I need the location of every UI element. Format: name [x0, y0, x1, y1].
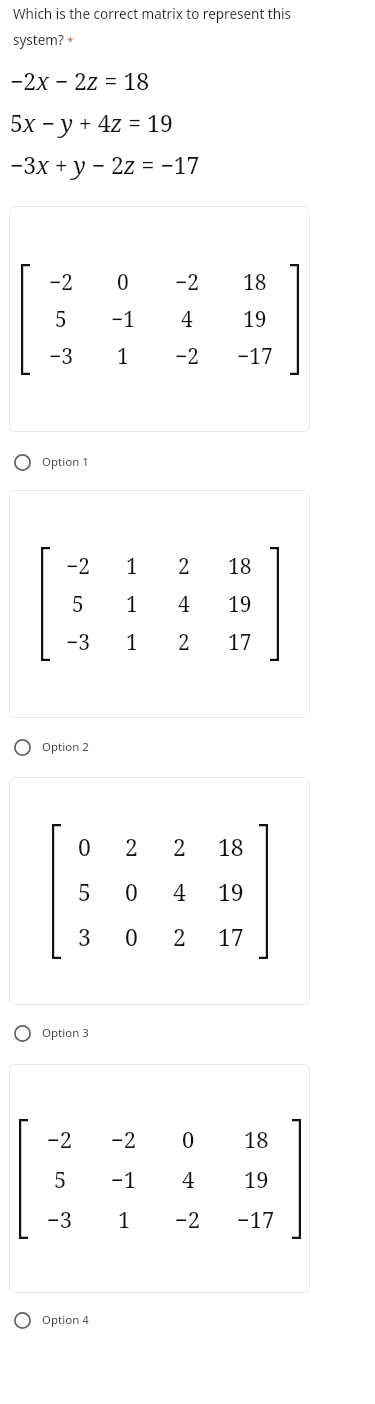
- staticText: 5: [78, 876, 91, 907]
- other: Option 4: [14, 1312, 31, 1329]
- staticText: 1: [117, 342, 129, 371]
- staticText: 18: [243, 268, 267, 297]
- other: Option 1: [14, 454, 31, 471]
- staticText: 1: [118, 1204, 131, 1234]
- staticText: −2: [66, 552, 90, 581]
- staticText: 5: [54, 1164, 67, 1194]
- staticText: Which is the correct matrix to represent…: [13, 5, 291, 49]
- staticText: 19: [244, 1164, 269, 1194]
- staticText: 19: [218, 876, 244, 907]
- staticText: −17: [237, 342, 273, 371]
- staticText: Option 4: [42, 1312, 89, 1328]
- staticText: 18: [218, 831, 244, 862]
- button[interactable]: 0: [9, 777, 310, 1005]
- button[interactable]: −2: [9, 206, 310, 432]
- staticText: −3: [66, 628, 90, 657]
- staticText: −2: [49, 268, 73, 297]
- other: Option 2: [14, 739, 31, 756]
- button[interactable]: Option 4: [0, 1303, 375, 1337]
- button[interactable]: Option 3: [0, 1016, 375, 1050]
- staticText: 4: [178, 590, 190, 619]
- staticText: Option 1: [42, 454, 89, 470]
- staticText: −2: [175, 1204, 201, 1234]
- staticText: 2: [173, 831, 186, 862]
- staticText: 18: [228, 552, 252, 581]
- button[interactable]: −2: [9, 490, 310, 718]
- staticText: −2x − 2z = 18: [10, 65, 150, 96]
- staticText: 0: [182, 1124, 195, 1154]
- staticText: −3: [49, 342, 73, 371]
- staticText: 5x − y + 4z = 19: [10, 107, 173, 138]
- staticText: −2: [175, 342, 199, 371]
- staticText: 4: [173, 876, 186, 907]
- staticText: −1: [111, 1164, 137, 1194]
- staticText: 2: [125, 831, 138, 862]
- staticText: 17: [228, 628, 252, 657]
- staticText: 1: [126, 628, 138, 657]
- staticText: 19: [228, 590, 252, 619]
- staticText: Option 2: [42, 739, 89, 755]
- staticText: Option 3: [42, 1025, 89, 1041]
- staticText: 5: [72, 590, 84, 619]
- staticText: 0: [125, 876, 138, 907]
- staticText: 4: [182, 1164, 195, 1194]
- staticText: −3x + y − 2z = −17: [10, 149, 200, 180]
- staticText: 1: [126, 590, 138, 619]
- staticText: −2: [47, 1124, 73, 1154]
- staticText: −2: [111, 1124, 137, 1154]
- staticText: 4: [181, 305, 193, 334]
- staticText: 0: [125, 921, 138, 952]
- button[interactable]: −2: [9, 1064, 310, 1293]
- staticText: −17: [237, 1204, 275, 1234]
- staticText: −2: [175, 268, 199, 297]
- staticText: 3: [78, 921, 91, 952]
- staticText: 1: [126, 552, 138, 581]
- staticText: 5: [55, 305, 67, 334]
- staticText: 0: [117, 268, 129, 297]
- staticText: −1: [111, 305, 135, 334]
- button[interactable]: Option 2: [0, 730, 375, 764]
- staticText: 17: [218, 921, 244, 952]
- button[interactable]: Option 1: [0, 445, 375, 479]
- staticText: −3: [47, 1204, 73, 1234]
- staticText: 2: [173, 921, 186, 952]
- staticText: 19: [243, 305, 267, 334]
- staticText: 2: [178, 552, 190, 581]
- staticText: 2: [178, 628, 190, 657]
- other: Option 3: [14, 1025, 31, 1042]
- staticText: 0: [78, 831, 91, 862]
- staticText: 18: [244, 1124, 269, 1154]
